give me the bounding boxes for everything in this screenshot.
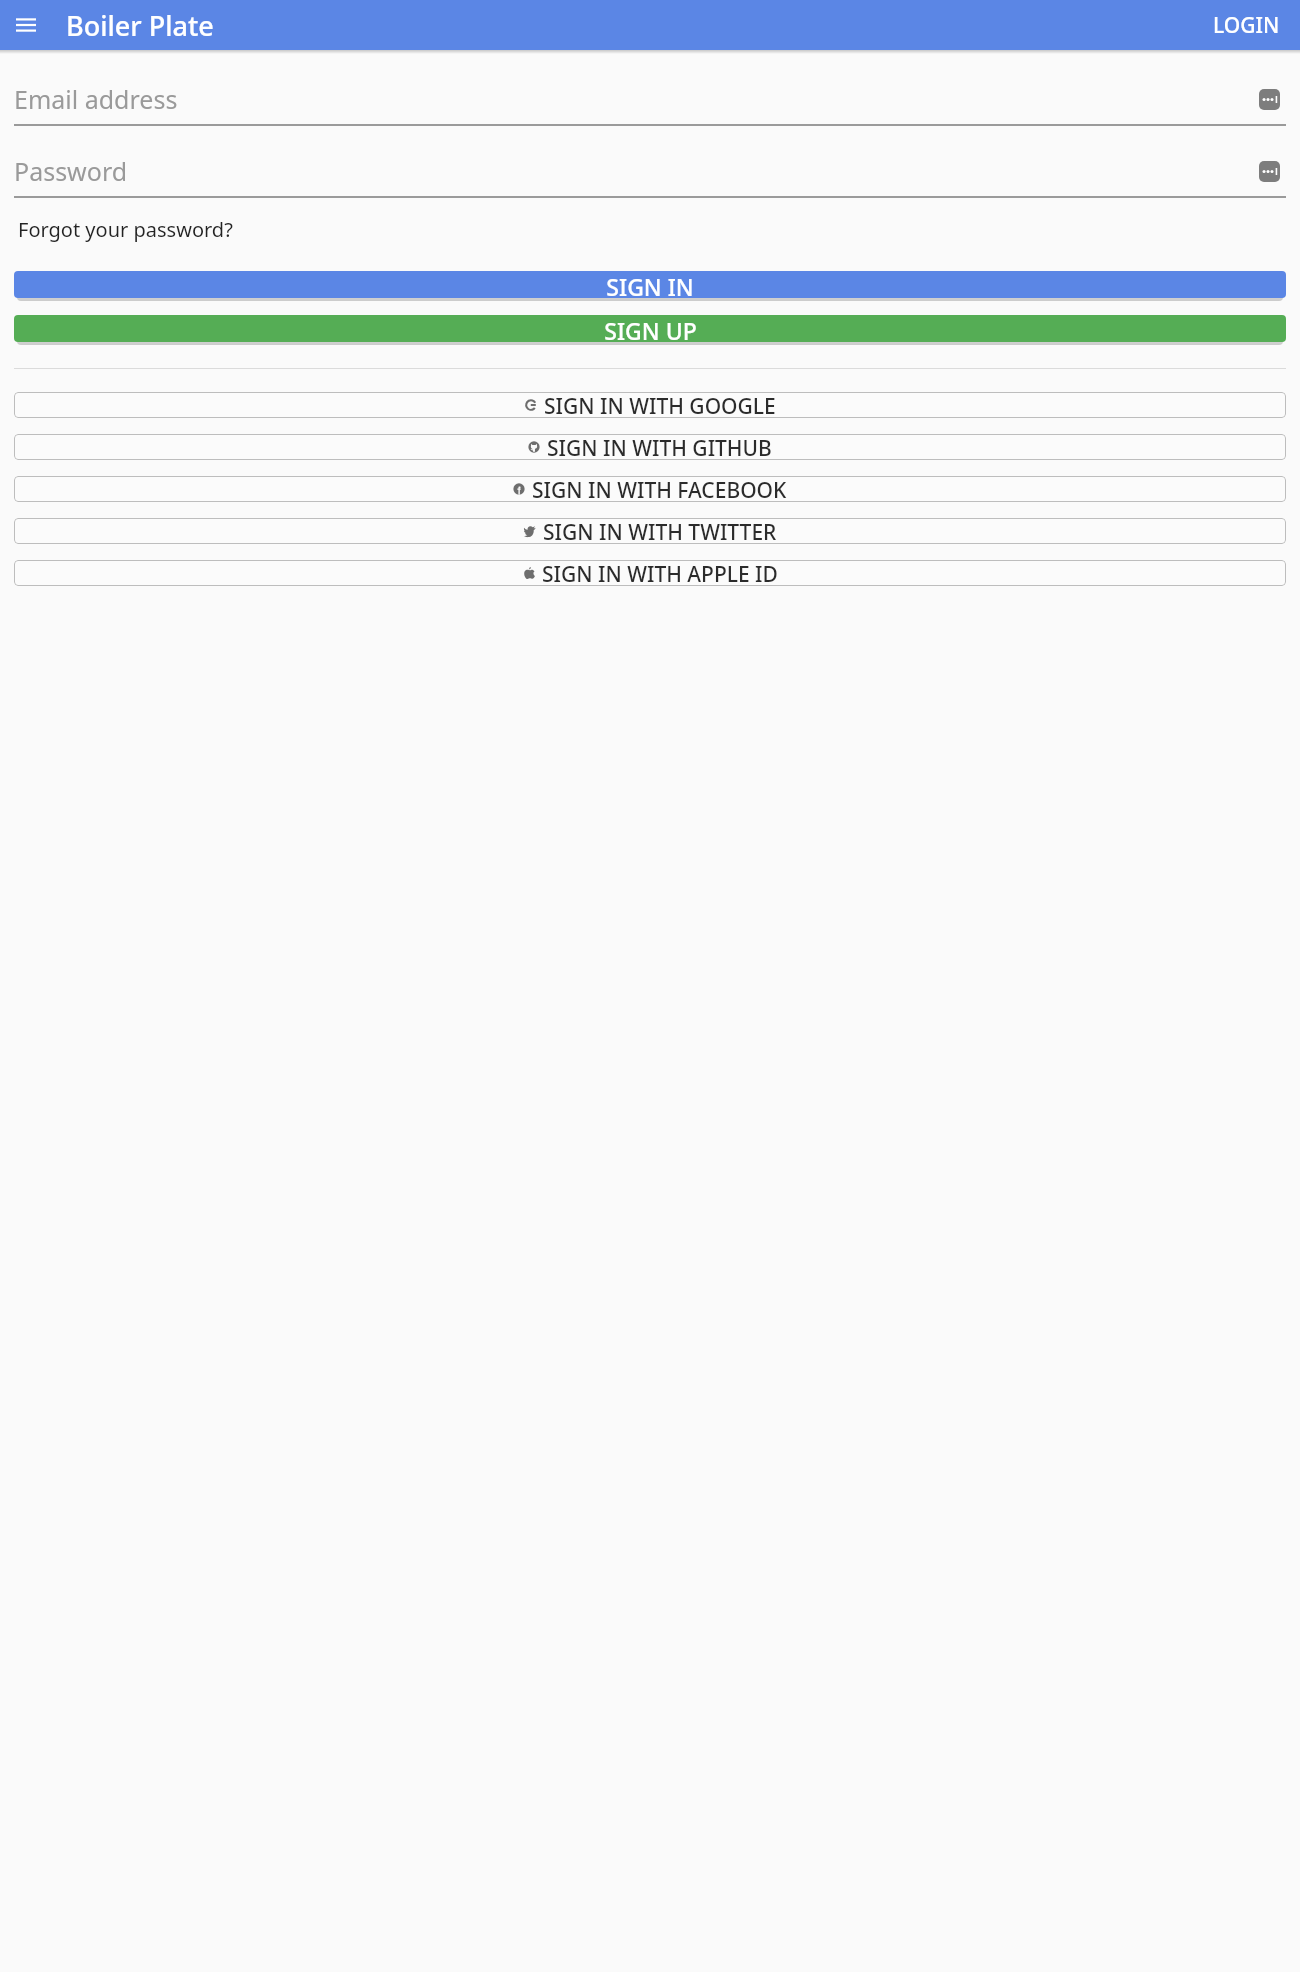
staticText: SIGN IN WITH FACEBOOK [532, 476, 787, 502]
staticText: SIGN IN WITH APPLE ID [542, 560, 778, 586]
other: Autofill [1259, 161, 1280, 182]
button[interactable]: Password [14, 146, 1286, 198]
button[interactable]: SIGN IN [14, 271, 1286, 298]
button[interactable]: SIGN UP [14, 315, 1286, 342]
other: Autofill [1259, 89, 1280, 110]
button[interactable]: Forgot your password? [14, 212, 237, 247]
staticText: SIGN IN WITH GITHUB [547, 434, 772, 460]
button[interactable]: SIGN IN WITH GOOGLE [14, 392, 1286, 418]
staticText: Forgot your password? [18, 216, 233, 243]
staticText: LOGIN [1213, 11, 1280, 40]
button[interactable]: Open navigation menu [6, 5, 46, 45]
staticText: SIGN IN WITH GOOGLE [544, 392, 776, 418]
button[interactable]: Email address [14, 74, 1286, 126]
staticText: SIGN UP [604, 315, 697, 342]
button[interactable]: SIGN IN WITH TWITTER [14, 518, 1286, 544]
button[interactable]: SIGN IN WITH GITHUB [14, 434, 1286, 460]
button[interactable]: SIGN IN WITH FACEBOOK [14, 476, 1286, 502]
staticText: SIGN IN [606, 271, 694, 298]
staticText: Email address [14, 82, 178, 116]
button[interactable]: SIGN IN WITH APPLE ID [14, 560, 1286, 586]
staticText: SIGN IN WITH TWITTER [543, 518, 777, 544]
staticText: Password [14, 154, 128, 188]
staticText: Boiler Plate [66, 7, 214, 44]
button[interactable]: LOGIN [1199, 3, 1294, 48]
